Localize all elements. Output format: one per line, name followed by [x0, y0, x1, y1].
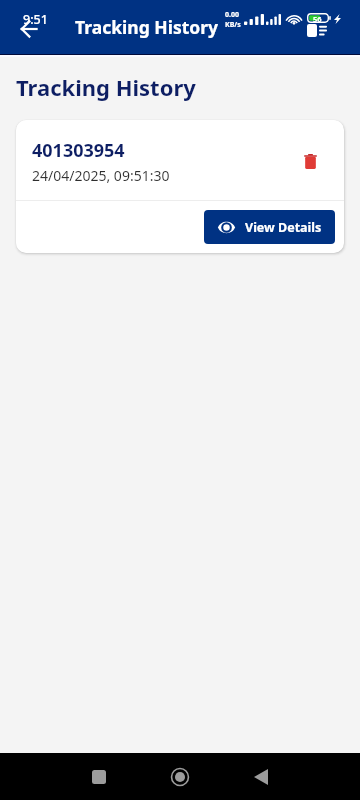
button[interactable]: Delete: [297, 148, 323, 174]
staticText: View Details: [245, 219, 322, 236]
staticText: 56: [313, 14, 322, 24]
button[interactable]: Home: [158, 755, 202, 799]
staticText: Tracking History: [75, 15, 219, 39]
staticText: KB/s: [225, 20, 241, 30]
button[interactable]: Summary: [295, 8, 339, 52]
staticText: 24/04/2025, 09:51:30: [32, 166, 170, 185]
staticText: Tracking History: [16, 72, 196, 102]
button[interactable]: Back: [239, 755, 283, 799]
button[interactable]: View Details: [204, 210, 335, 244]
staticText: 401303954: [32, 138, 125, 163]
staticText: 9:51: [23, 11, 48, 28]
button[interactable]: Back: [6, 6, 51, 51]
staticText: 0.00: [225, 10, 239, 20]
button[interactable]: Recent apps: [77, 755, 121, 799]
